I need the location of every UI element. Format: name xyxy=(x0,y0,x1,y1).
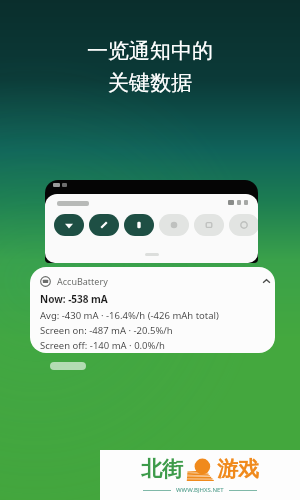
staticText: Avg: -430 mA · -16.4%/h (-426 mAh total) xyxy=(40,309,219,322)
button[interactable]: Collapse xyxy=(259,274,273,288)
staticText: Screen on: -487 mA · -20.5%/h xyxy=(40,324,173,337)
button[interactable]: Manage xyxy=(50,362,86,370)
button[interactable]: Flashlight xyxy=(124,214,154,236)
staticText: 一览通知中的 xyxy=(87,38,213,64)
button[interactable]: AccuBattery xyxy=(30,267,275,353)
staticText: WWW.BJHXS.NET xyxy=(176,486,224,494)
button[interactable]: Wi-Fi xyxy=(54,214,84,236)
button[interactable]: Battery saver xyxy=(229,214,258,236)
button[interactable]: Auto rotate xyxy=(194,214,224,236)
staticText: 关键数据 xyxy=(108,70,192,96)
staticText: Screen off: -140 mA · 0.0%/h xyxy=(40,339,165,352)
button[interactable]: Do not disturb xyxy=(159,214,189,236)
button[interactable]: Mobile data xyxy=(89,214,119,236)
staticText: AccuBattery xyxy=(57,275,108,287)
staticText: 北街 xyxy=(141,456,183,482)
staticText: 游戏 xyxy=(217,456,259,482)
staticText: Now: -538 mA xyxy=(40,292,108,306)
